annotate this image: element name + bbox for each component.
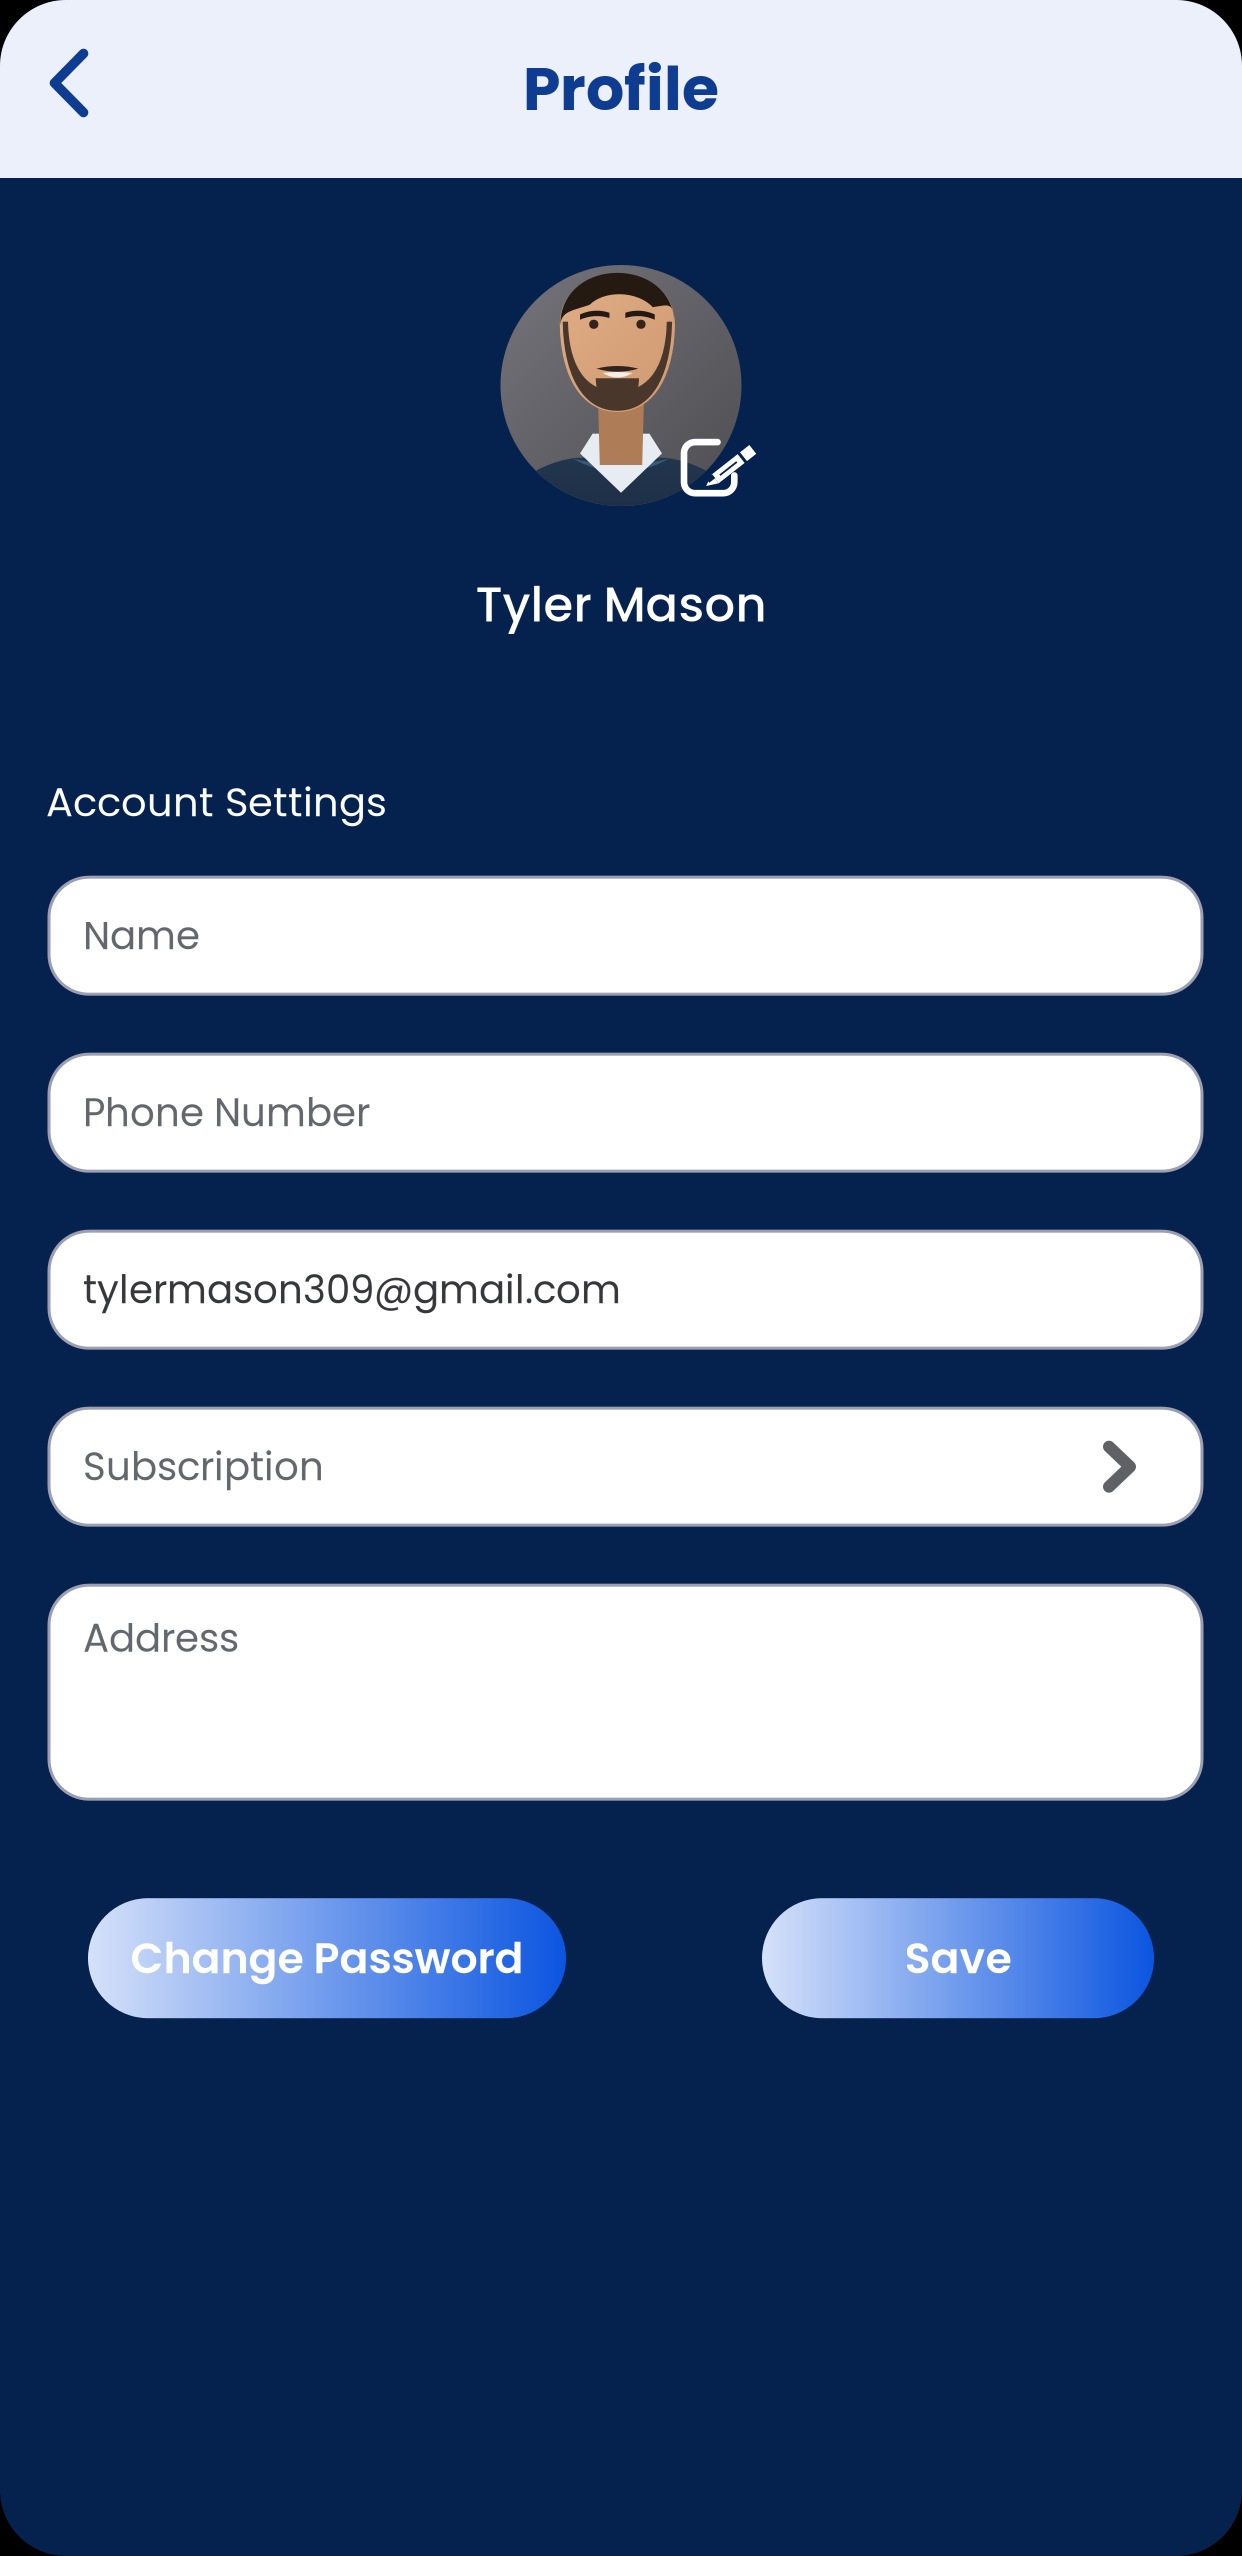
staticText: Name — [83, 909, 200, 963]
staticText: Phone Number — [83, 1086, 370, 1140]
button[interactable]: Save — [762, 1898, 1154, 2018]
staticText: tylermason309@gmail.com — [83, 1263, 621, 1317]
staticText: Address — [83, 1611, 239, 1665]
staticText: Subscription — [83, 1440, 324, 1494]
staticText: Profile — [523, 47, 719, 131]
staticText: Account Settings — [46, 774, 387, 830]
staticText: Change Password — [130, 1928, 523, 1988]
button[interactable]: Back — [4, 19, 134, 147]
staticText: Tyler Mason — [475, 571, 766, 638]
staticText: Save — [904, 1928, 1011, 1988]
button[interactable]: Subscription — [49, 1408, 1202, 1525]
button[interactable]: Edit profile photo — [679, 436, 755, 500]
button[interactable]: Change Password — [88, 1898, 566, 2018]
